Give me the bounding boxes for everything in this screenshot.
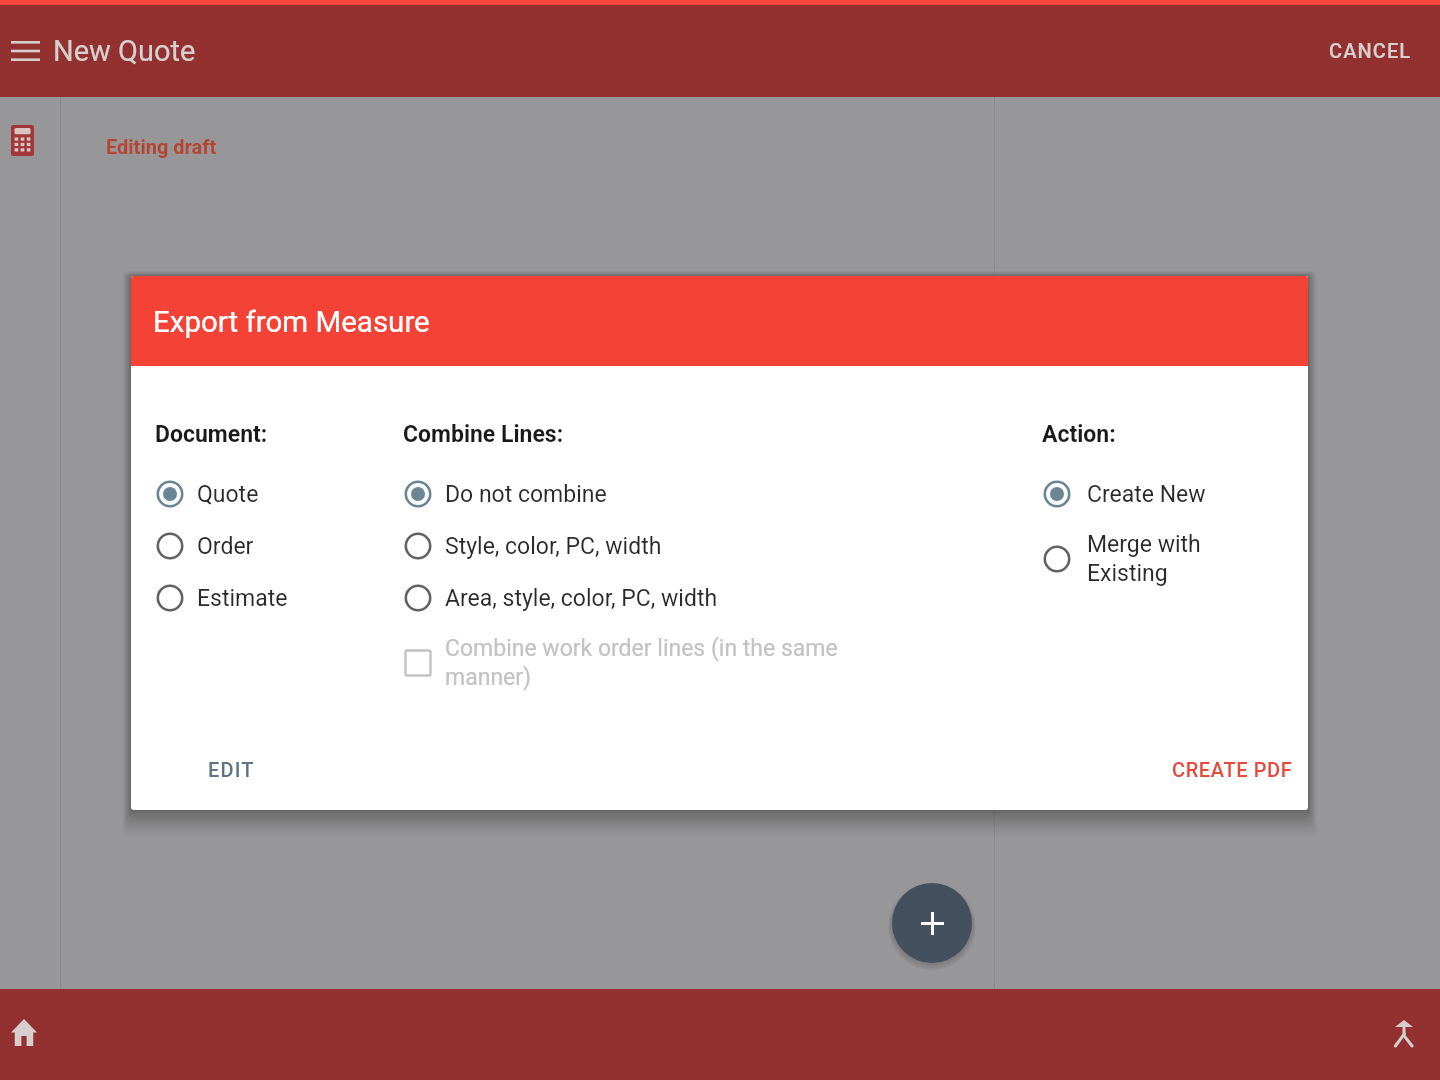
staticText: Estimate: [197, 585, 288, 612]
staticText: New Quote: [53, 34, 196, 68]
button[interactable]: Combine work order lines (in the same ma…: [401, 622, 845, 703]
button[interactable]: Home: [0, 1009, 47, 1056]
staticText: EDIT: [208, 758, 255, 781]
button[interactable]: Estimate: [153, 572, 288, 624]
staticText: Do not combine: [445, 481, 607, 508]
button[interactable]: Quote: [153, 468, 259, 520]
staticText: Quote: [197, 481, 259, 508]
button[interactable]: Create New: [1040, 468, 1206, 520]
button[interactable]: Order: [153, 520, 254, 572]
button[interactable]: Merge: [1380, 1009, 1427, 1056]
button[interactable]: EDIT: [192, 746, 271, 793]
button[interactable]: Do not combine: [401, 468, 607, 520]
button[interactable]: Area, style, color, PC, width: [401, 572, 718, 624]
staticText: Action:: [1042, 421, 1116, 448]
button[interactable]: Menu: [0, 5, 51, 97]
staticText: Merge with Existing: [1087, 531, 1201, 587]
staticText: Export from Measure: [153, 305, 430, 340]
button[interactable]: Style, color, PC, width: [401, 520, 662, 572]
staticText: CREATE PDF: [1172, 758, 1293, 781]
staticText: Order: [197, 533, 254, 560]
staticText: Combine work order lines (in the same ma…: [445, 635, 845, 691]
button[interactable]: Add: [892, 883, 972, 963]
button[interactable]: CANCEL: [1304, 4, 1437, 96]
staticText: Style, color, PC, width: [445, 533, 662, 560]
staticText: CANCEL: [1329, 39, 1412, 62]
button[interactable]: CREATE PDF: [1156, 746, 1308, 793]
staticText: Combine Lines:: [403, 421, 564, 448]
staticText: Create New: [1087, 481, 1206, 508]
staticText: Area, style, color, PC, width: [445, 585, 718, 612]
staticText: Editing draft: [106, 135, 217, 158]
button[interactable]: Calculator: [0, 117, 45, 164]
staticText: Document:: [155, 421, 268, 448]
button[interactable]: Merge with Existing: [1040, 518, 1201, 599]
